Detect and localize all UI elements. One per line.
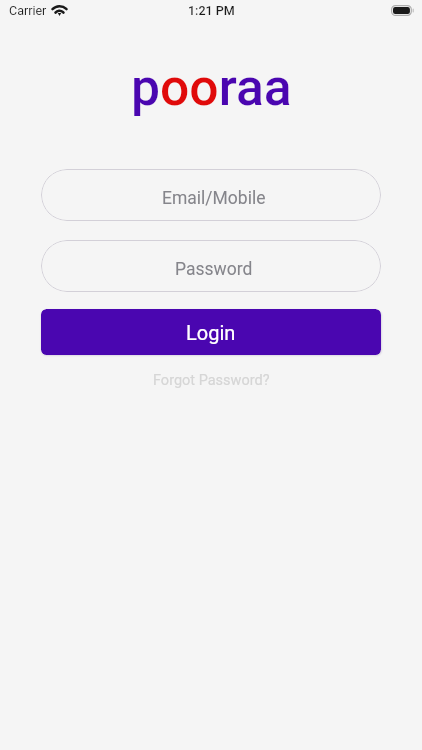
staticText: 1:21 PM xyxy=(188,3,235,18)
staticText: Carrier xyxy=(9,3,47,18)
button[interactable]: Password xyxy=(41,240,381,292)
button[interactable]: Forgot Password? xyxy=(145,369,278,392)
staticText: Login xyxy=(186,321,236,344)
staticText: Password xyxy=(175,259,253,280)
other: Wi-Fi signal xyxy=(52,5,67,16)
other: Battery full xyxy=(391,5,414,16)
staticText: Email/Mobile xyxy=(162,188,266,209)
button[interactable]: Email/Mobile xyxy=(41,169,381,221)
staticText: Forgot Password? xyxy=(153,372,270,389)
button[interactable]: Login xyxy=(41,309,381,355)
staticText: pooraa xyxy=(131,57,292,117)
